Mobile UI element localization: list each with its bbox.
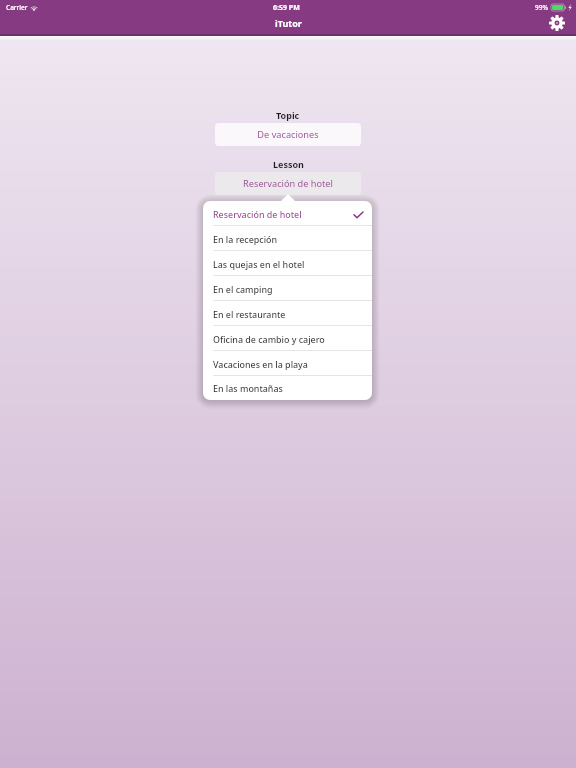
button[interactable]: En el restaurante xyxy=(203,301,372,326)
button[interactable]: Oficina de cambio y cajero xyxy=(203,326,372,351)
staticText: Lesson xyxy=(273,158,304,170)
button[interactable]: En las montañas xyxy=(203,376,372,400)
staticText: En la recepción xyxy=(213,233,278,245)
staticText: Oficina de cambio y cajero xyxy=(213,333,325,345)
staticText: 6:59 PM xyxy=(273,3,300,13)
staticText: iTutor xyxy=(275,17,302,29)
staticText: En el restaurante xyxy=(213,308,286,320)
staticText: De vacaciones xyxy=(257,128,319,141)
button[interactable]: Reservación de hotel xyxy=(215,172,361,195)
staticText: Las quejas en el hotel xyxy=(213,258,305,270)
staticText: Carrier xyxy=(6,3,28,12)
staticText: Topic xyxy=(276,109,300,121)
staticText: En el camping xyxy=(213,283,273,295)
button[interactable]: En el camping xyxy=(203,276,372,301)
button[interactable]: De vacaciones xyxy=(215,123,361,146)
staticText: Reservación de hotel xyxy=(213,208,302,220)
button[interactable]: Reservación de hotel xyxy=(203,201,372,226)
staticText: Vacaciones en la playa xyxy=(213,358,308,370)
staticText: Reservación de hotel xyxy=(243,177,333,190)
button[interactable]: Vacaciones en la playa xyxy=(203,351,372,376)
button[interactable]: En la recepción xyxy=(203,226,372,251)
button[interactable]: Settings xyxy=(549,15,565,31)
button[interactable]: Las quejas en el hotel xyxy=(203,251,372,276)
staticText: 99% xyxy=(535,3,548,12)
staticText: En las montañas xyxy=(213,382,283,394)
